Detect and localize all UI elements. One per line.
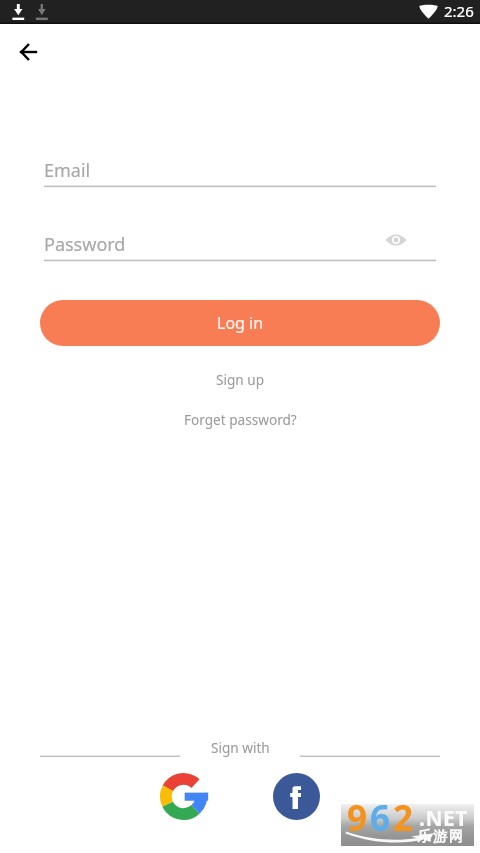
other: Wifi: [419, 5, 438, 19]
staticText: 乐游网: [416, 828, 464, 846]
button[interactable]: Sign in with Google: [160, 773, 207, 820]
staticText: 2:26: [444, 1, 474, 21]
staticText: Password: [44, 232, 126, 257]
staticText: 9: [347, 794, 370, 836]
button[interactable]: Email: [44, 154, 436, 186]
button[interactable]: Password: [44, 228, 436, 260]
button[interactable]: Forget password?: [170, 406, 311, 433]
staticText: .NET: [419, 804, 468, 833]
staticText: Sign up: [216, 370, 265, 389]
button[interactable]: Log in: [40, 300, 440, 346]
staticText: Log in: [217, 312, 264, 334]
staticText: Forget password?: [184, 410, 297, 429]
staticText: Sign with: [211, 738, 270, 757]
staticText: 6: [370, 794, 393, 836]
button[interactable]: Sign in with Facebook: [273, 773, 320, 820]
button[interactable]: Show password: [378, 222, 414, 258]
button[interactable]: Sign up: [202, 366, 279, 393]
staticText: Email: [44, 158, 91, 183]
button[interactable]: Back: [6, 30, 50, 74]
staticText: 2: [393, 794, 416, 836]
